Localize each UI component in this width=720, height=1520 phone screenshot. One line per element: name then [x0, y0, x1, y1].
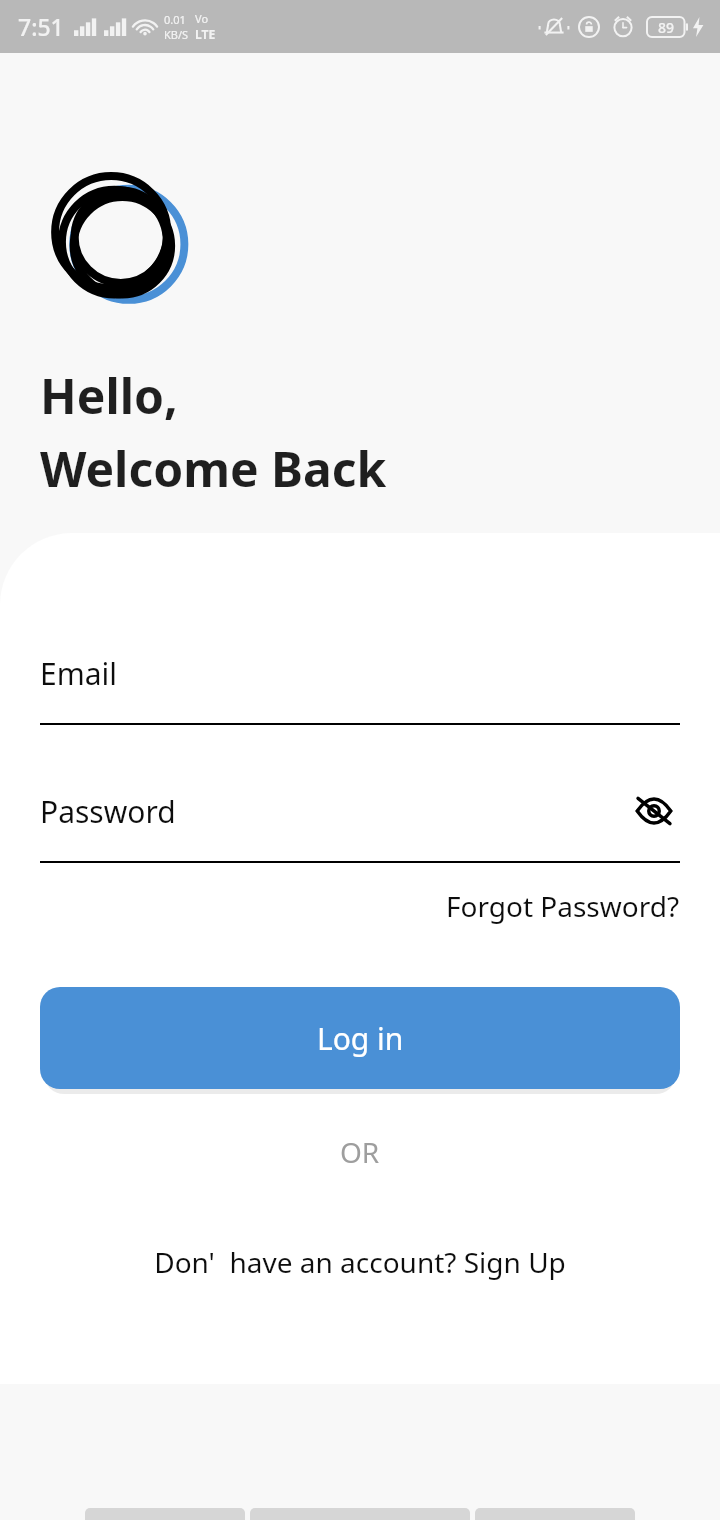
staticText: LTE: [195, 26, 216, 42]
button[interactable]: Show password: [628, 785, 680, 837]
staticText: 0.01: [164, 12, 186, 27]
staticText: Vo: [195, 11, 209, 26]
staticText: Welcome Back: [40, 436, 387, 501]
button[interactable]: Don' have an account? Sign Up: [40, 1243, 680, 1281]
staticText: Email: [40, 653, 118, 694]
button[interactable]: Email: [40, 645, 680, 701]
staticText: OR: [340, 1133, 380, 1171]
button[interactable]: Password: [40, 783, 680, 839]
staticText: Log in: [317, 1018, 404, 1059]
button[interactable]: Forgot Password?: [40, 887, 680, 925]
button[interactable]: Log in: [40, 987, 680, 1089]
staticText: KB/S: [164, 27, 189, 42]
staticText: 7:51: [18, 11, 64, 42]
staticText: Password: [40, 791, 176, 832]
staticText: 89: [658, 18, 675, 37]
staticText: Forgot Password?: [446, 887, 680, 925]
staticText: Hello,: [40, 363, 178, 428]
staticText: Don' have an account? Sign Up: [154, 1243, 566, 1281]
